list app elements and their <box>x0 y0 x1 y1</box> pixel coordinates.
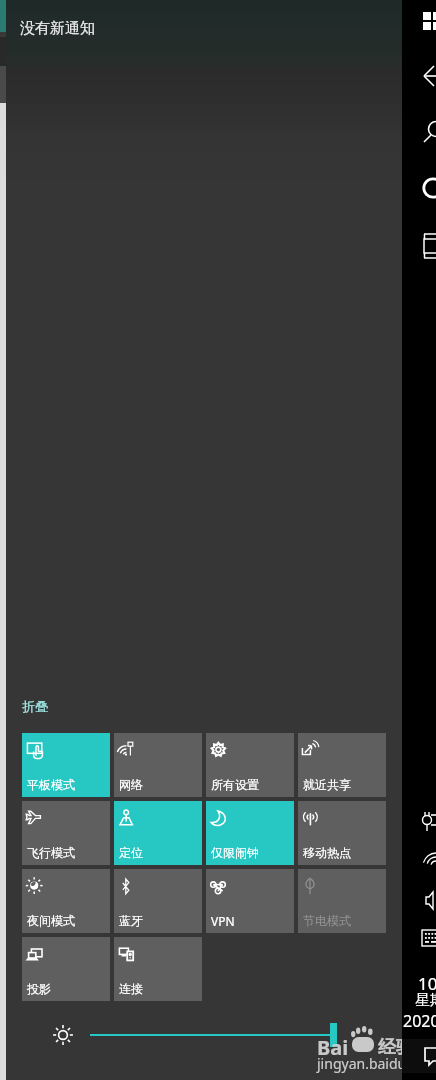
staticText: 网络 <box>119 777 143 792</box>
button[interactable]: 节电模式 <box>298 869 386 933</box>
staticText: 投影 <box>27 981 51 996</box>
staticText: 没有新通知 <box>20 19 95 38</box>
button[interactable]: Brightness <box>52 1024 74 1046</box>
staticText: VPN <box>211 913 235 929</box>
staticText: 夜间模式 <box>27 913 75 928</box>
staticText: 10:2 <box>418 972 436 995</box>
button[interactable]: 定位 <box>114 801 202 865</box>
button[interactable]: 飞行模式 <box>22 801 110 865</box>
button[interactable]: 移动热点 <box>298 801 386 865</box>
button[interactable]: 仅限闹钟 <box>206 801 294 865</box>
staticText: 星期 <box>415 991 436 1010</box>
staticText: 蓝牙 <box>119 913 143 928</box>
button[interactable]: 所有设置 <box>206 733 294 797</box>
button[interactable]: 就近共享 <box>298 733 386 797</box>
staticText: 就近共享 <box>303 777 351 792</box>
staticText: 移动热点 <box>303 845 351 860</box>
button[interactable]: 网络 <box>114 733 202 797</box>
button[interactable]: 连接 <box>114 937 202 1001</box>
button[interactable]: 夜间模式 <box>22 869 110 933</box>
button[interactable]: Notifications <box>424 1044 436 1066</box>
staticText: Bai <box>317 1034 349 1061</box>
staticText: jingyan.baidu.com <box>317 1054 436 1073</box>
button[interactable]: 平板模式 <box>22 733 110 797</box>
staticText: 仅限闹钟 <box>211 845 259 860</box>
button[interactable]: Brightness slider <box>86 1021 342 1049</box>
staticText: 所有设置 <box>211 777 259 792</box>
button[interactable]: 折叠 <box>22 698 48 714</box>
button[interactable]: 蓝牙 <box>114 869 202 933</box>
staticText: 经验 <box>378 1036 414 1059</box>
staticText: 飞行模式 <box>27 845 75 860</box>
button[interactable]: VPN <box>206 869 294 933</box>
staticText: 平板模式 <box>27 777 75 792</box>
staticText: 2020/ <box>403 1010 436 1032</box>
staticText: 节电模式 <box>303 913 351 928</box>
staticText: 连接 <box>119 981 143 996</box>
button[interactable]: 投影 <box>22 937 110 1001</box>
staticText: 定位 <box>119 845 143 860</box>
